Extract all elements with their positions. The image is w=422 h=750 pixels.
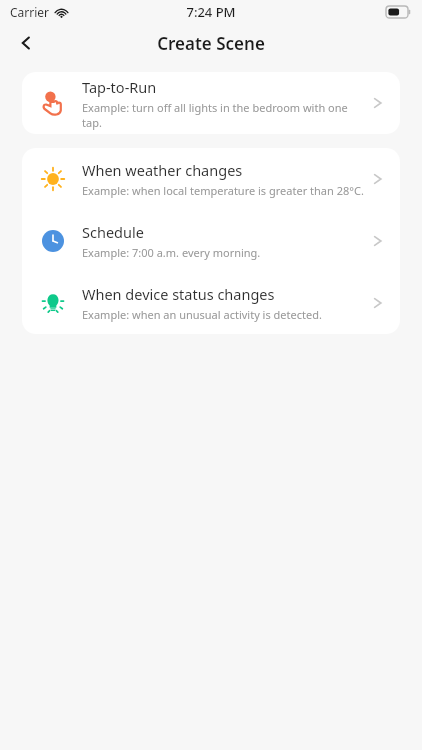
button[interactable]: Tap-to-Run [22, 72, 400, 134]
staticText: Schedule [82, 222, 144, 242]
staticText: Example: when local temperature is great… [82, 183, 364, 198]
button[interactable]: When weather changes [22, 148, 400, 210]
staticText: When device status changes [82, 284, 275, 304]
staticText: When weather changes [82, 160, 243, 180]
staticText: Example: when an unusual activity is det… [82, 307, 322, 322]
staticText: Create Scene [157, 32, 265, 55]
staticText: Example: turn off all lights in the bedr… [82, 100, 364, 130]
button[interactable]: When device status changes [22, 272, 400, 334]
staticText: Example: 7:00 a.m. every morning. [82, 245, 261, 260]
staticText: 7:24 PM [186, 3, 236, 21]
button[interactable]: Schedule [22, 210, 400, 272]
staticText: Carrier [10, 4, 50, 20]
button[interactable]: Back [6, 24, 46, 62]
staticText: Tap-to-Run [82, 77, 157, 97]
